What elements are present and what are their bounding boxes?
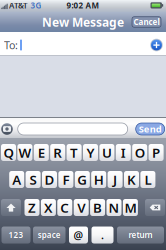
staticText: R [53, 144, 62, 161]
button[interactable]: space [33, 226, 65, 243]
staticText: N [108, 199, 119, 216]
staticText: M [124, 199, 136, 216]
staticText: Cancel [133, 17, 159, 27]
staticText: B [93, 199, 102, 216]
staticText: S [30, 171, 37, 188]
staticText: Z [28, 199, 36, 216]
staticText: C [60, 199, 69, 216]
staticText: O [135, 144, 145, 161]
button[interactable]: S [26, 171, 41, 188]
button[interactable]: A [9, 171, 24, 188]
staticText: D [44, 171, 54, 188]
staticText: @ [73, 228, 83, 242]
staticText: V [77, 199, 85, 216]
button[interactable]: Camera [0, 121, 15, 137]
button[interactable]: @ [69, 226, 88, 243]
button[interactable]: Q [1, 144, 16, 161]
staticText: Send [139, 123, 162, 135]
button[interactable]: V [74, 199, 89, 216]
staticText: To: [4, 38, 18, 52]
button[interactable]: T [67, 144, 82, 161]
button[interactable]: N [106, 199, 121, 216]
staticText: P [152, 144, 160, 161]
button[interactable]: P [149, 144, 164, 161]
staticText: G [77, 171, 87, 188]
button[interactable]: Cancel [132, 17, 161, 27]
staticText: X [44, 199, 53, 216]
button[interactable]: D [42, 171, 57, 188]
button[interactable]: U [99, 144, 114, 161]
staticText: A [12, 171, 21, 188]
staticText: return [128, 230, 152, 240]
button[interactable]: X [41, 199, 56, 216]
staticText: K [127, 171, 136, 188]
staticText: E [38, 144, 45, 161]
button[interactable]: I [116, 144, 131, 161]
button[interactable]: Delete [145, 199, 165, 216]
staticText: H [94, 171, 104, 188]
staticText: AT&T [9, 0, 28, 11]
staticText: Y [86, 144, 94, 161]
staticText: 123 [8, 230, 23, 240]
button[interactable]: L [140, 171, 155, 188]
button[interactable]: O [132, 144, 147, 161]
button[interactable]: C [57, 199, 72, 216]
staticText: . [101, 228, 104, 242]
button[interactable]: 123 [1, 226, 30, 243]
staticText: I [121, 144, 126, 161]
staticText: J [113, 171, 117, 188]
button[interactable]: H [91, 171, 106, 188]
staticText: 3G [30, 0, 41, 11]
button[interactable]: Y [83, 144, 98, 161]
staticText: 9:02 AM [66, 0, 99, 11]
button[interactable]: B [90, 199, 105, 216]
staticText: U [102, 144, 112, 161]
button[interactable]: F [58, 171, 73, 188]
staticText: L [144, 171, 151, 188]
button[interactable]: R [50, 144, 65, 161]
staticText: T [70, 144, 78, 161]
button[interactable]: W [17, 144, 32, 161]
staticText: W [18, 144, 31, 161]
button[interactable]: J [108, 171, 123, 188]
button[interactable]: G [75, 171, 90, 188]
button[interactable]: Shift [1, 199, 21, 216]
staticText: Q [3, 144, 13, 161]
button[interactable]: Send [136, 123, 165, 135]
button[interactable]: M [123, 199, 138, 216]
button[interactable]: return [117, 226, 164, 243]
staticText: F [62, 171, 69, 188]
button[interactable]: Z [24, 199, 39, 216]
button[interactable]: K [124, 171, 139, 188]
staticText: New Message [42, 14, 124, 30]
button[interactable]: E [34, 144, 49, 161]
button[interactable]: Add contact [147, 36, 165, 54]
button[interactable]: . [91, 226, 113, 243]
staticText: space [38, 230, 61, 240]
